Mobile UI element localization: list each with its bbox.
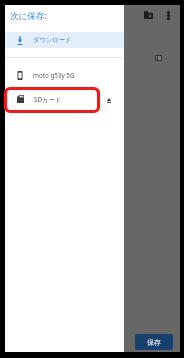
button[interactable]: 保存 bbox=[135, 334, 173, 350]
button[interactable]: ダウンロード bbox=[5, 32, 124, 48]
staticText: 保存 bbox=[147, 338, 161, 347]
staticText: SDカード bbox=[34, 95, 62, 104]
button[interactable]: More options bbox=[160, 7, 177, 24]
button[interactable]: moto g53y 5G bbox=[5, 67, 124, 83]
button[interactable]: SDカード bbox=[5, 91, 124, 107]
staticText: moto g53y 5G bbox=[33, 71, 75, 80]
button[interactable]: Create new folder bbox=[140, 6, 157, 23]
staticText: ダウンロード bbox=[33, 36, 72, 44]
staticText: 次に保存: bbox=[10, 10, 47, 22]
button[interactable]: Eject SD card bbox=[102, 94, 115, 107]
